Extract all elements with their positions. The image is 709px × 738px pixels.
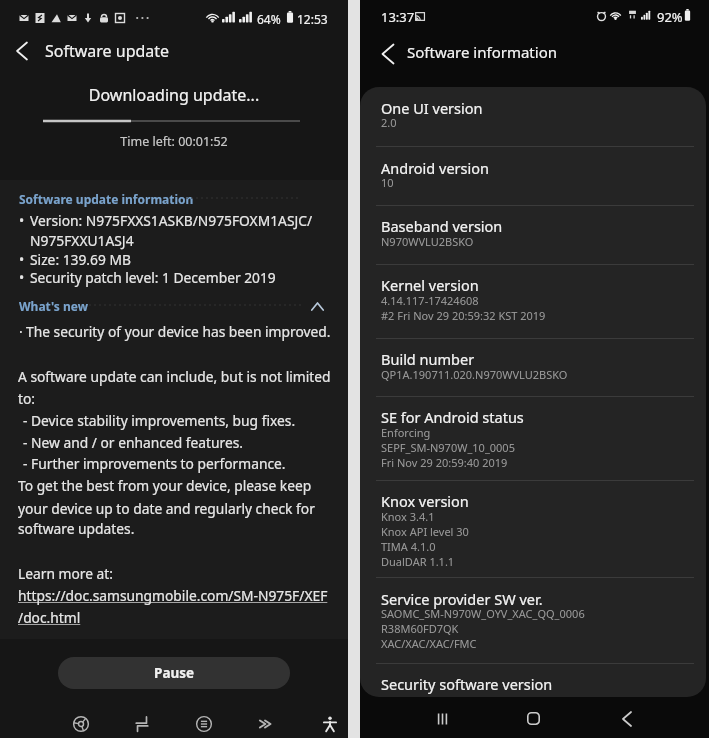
staticText: • (19, 268, 25, 287)
staticText: • (19, 250, 25, 269)
staticText: 2.0 (381, 115, 397, 130)
staticText: QP1A.190711.020.N970WVLU2BSKO (381, 367, 568, 382)
button[interactable]: Fast forward (253, 711, 279, 737)
staticText: Size: 139.69 MB (30, 250, 131, 269)
button[interactable]: Home (514, 699, 553, 738)
button[interactable]: Back (369, 35, 407, 73)
staticText: Downloading update... (0, 84, 348, 106)
staticText: XAC/XAC/XAC/FMC (381, 636, 477, 651)
button[interactable]: Back (607, 699, 646, 738)
staticText: Knox 3.4.1 (381, 509, 435, 524)
button[interactable]: Switch (129, 711, 155, 737)
staticText: Software information (407, 42, 557, 62)
staticText: SE for Android status (381, 407, 524, 427)
button[interactable]: Pause (58, 657, 290, 689)
staticText: Fri Nov 29 20:59:40 2019 (381, 455, 508, 470)
staticText: Security software version (381, 674, 553, 694)
staticText: software updates. (18, 519, 135, 538)
staticText: Software update (45, 40, 170, 62)
staticText: Knox API level 30 (381, 524, 469, 539)
staticText: https://doc.samsungmobile.com/SM-N975F/X… (18, 586, 328, 605)
staticText: 10 (381, 175, 394, 190)
staticText: Security patch level: 1 December 2019 (30, 268, 276, 287)
staticText: Baseband version (381, 216, 503, 236)
staticText: · (19, 322, 23, 341)
button[interactable] (360, 397, 709, 480)
staticText: N970WVLU2BSKO (381, 234, 474, 249)
staticText: Enforcing (381, 425, 431, 440)
button[interactable] (360, 147, 709, 205)
staticText: One UI version (381, 98, 483, 118)
staticText: What's new (19, 298, 89, 314)
staticText: Build number (381, 349, 475, 369)
button[interactable] (360, 339, 709, 396)
staticText: - Device stability improvements, bug fix… (23, 411, 296, 430)
staticText: SAOMC_SM-N970W_OYV_XAC_QQ_0006 (381, 606, 585, 621)
staticText: Version: N975FXXS1ASKB/N975FOXM1ASJC/ (30, 211, 313, 230)
staticText: #2 Fri Nov 29 20:59:32 KST 2019 (381, 308, 546, 323)
button[interactable] (360, 265, 709, 338)
staticText: 4.14.117-17424608 (381, 293, 479, 308)
button[interactable] (360, 481, 709, 578)
staticText: - Further improvements to performance. (23, 454, 286, 473)
button[interactable] (360, 87, 709, 146)
button[interactable]: Collapse (306, 295, 329, 318)
staticText: Service provider SW ver. (381, 589, 543, 609)
staticText: R38M60FD7QK (381, 621, 459, 636)
staticText: 64% (257, 11, 281, 27)
staticText: N975FXXU1ASJ4 (30, 231, 134, 250)
staticText: The security of your device has been imp… (26, 322, 331, 341)
staticText: Knox version (381, 491, 469, 511)
staticText: A software update can include, but is no… (18, 367, 331, 386)
staticText: TIMA 4.1.0 (381, 539, 436, 554)
button[interactable] (360, 664, 709, 698)
staticText: /doc.html (18, 608, 81, 627)
button[interactable]: Recents (423, 699, 462, 738)
button[interactable]: List (191, 711, 217, 737)
staticText: Android version (381, 158, 489, 178)
staticText: Pause (154, 664, 195, 682)
staticText: - New and / or enhanced features. (23, 433, 244, 452)
staticText: Software update information (19, 191, 194, 207)
staticText: your device up to date and regularly che… (18, 499, 315, 518)
staticText: 92% (657, 8, 683, 26)
button[interactable]: Browser (68, 711, 94, 737)
staticText: DualDAR 1.1.1 (381, 554, 455, 569)
staticText: Kernel version (381, 275, 479, 295)
staticText: Learn more at: (18, 564, 114, 583)
button[interactable]: Accessibility (317, 711, 343, 737)
staticText: to: (18, 389, 36, 408)
staticText: • (19, 211, 25, 230)
button[interactable]: Back (4, 33, 40, 69)
staticText: SEPF_SM-N970W_10_0005 (381, 440, 515, 455)
staticText: 12:53 (297, 11, 328, 27)
staticText: Time left: 00:01:52 (0, 133, 348, 150)
staticText: To get the best from your device, please… (18, 476, 312, 495)
button[interactable] (360, 206, 709, 264)
staticText: 13:37 (381, 8, 415, 26)
button[interactable] (360, 578, 709, 663)
